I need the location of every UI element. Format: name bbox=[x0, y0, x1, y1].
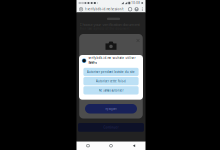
button[interactable]: Back bbox=[122, 141, 145, 150]
staticText: fr.verify.bdb-id.me/session/t bbox=[84, 7, 123, 11]
button[interactable]: Recent apps bbox=[76, 141, 99, 150]
staticText: Try Again bbox=[105, 107, 117, 110]
button[interactable]: Reload bbox=[128, 7, 132, 11]
button[interactable]: Close bbox=[134, 37, 141, 44]
button[interactable]: Profile bbox=[134, 7, 139, 11]
button[interactable]: Try Again bbox=[85, 104, 137, 113]
staticText: Choose your verification document bbox=[79, 22, 139, 27]
button[interactable]: Autoriser pendant la visite du site bbox=[83, 68, 139, 76]
button[interactable]: Autoriser cette fois-ci bbox=[83, 77, 139, 85]
button[interactable]: Continuer bbox=[78, 123, 144, 132]
staticText: 10:08 bbox=[131, 1, 140, 5]
staticText: verify.bdb-id.me souhaite utiliser votre bbox=[88, 56, 135, 63]
staticText: Autoriser cette fois-ci bbox=[96, 79, 126, 83]
staticText: Autoriser pendant la visite du site bbox=[87, 70, 135, 74]
button[interactable]: More options bbox=[141, 7, 143, 11]
staticText: caméra bbox=[88, 61, 96, 65]
button[interactable]: Home bbox=[99, 141, 122, 150]
staticText: Ne jamais autoriser bbox=[98, 89, 123, 92]
button[interactable]: Ne jamais autoriser bbox=[83, 86, 139, 94]
staticText: Continuer bbox=[103, 126, 118, 129]
